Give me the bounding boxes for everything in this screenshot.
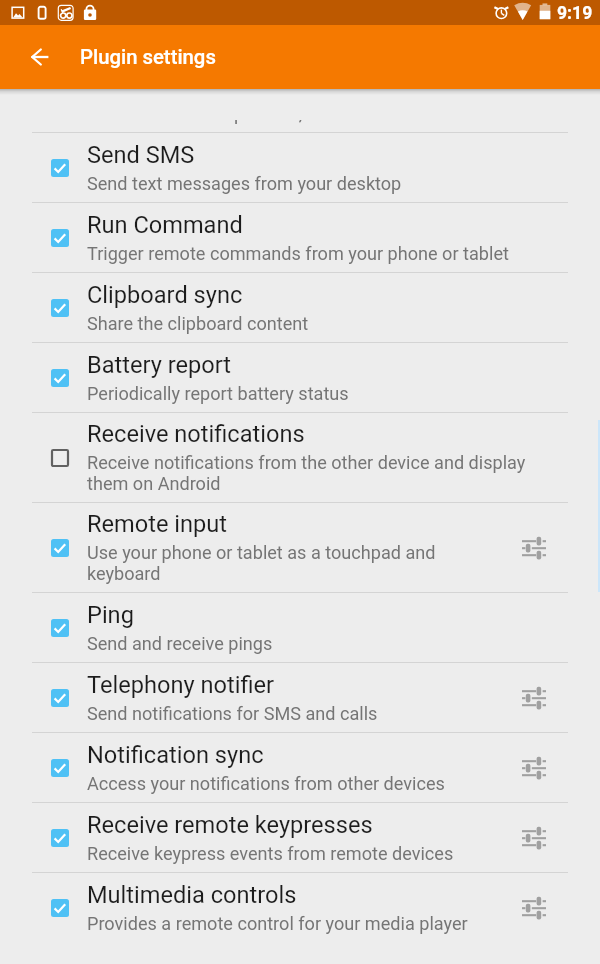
staticText: Remote input xyxy=(87,510,228,538)
staticText: Send and receive pings xyxy=(87,633,273,654)
button[interactable]: Send SMS xyxy=(0,133,600,202)
button[interactable]: Receive notifications xyxy=(0,413,600,502)
button[interactable]: Back xyxy=(8,25,72,89)
staticText: Battery report xyxy=(87,351,231,379)
button[interactable]: Plugin settings xyxy=(511,745,557,791)
button[interactable]: Ping xyxy=(0,593,600,662)
staticText: Share and receive pictures, videos or fi… xyxy=(87,103,419,124)
staticText: Send text messages from your desktop xyxy=(87,173,402,194)
staticText: Receive notifications xyxy=(87,420,305,448)
button[interactable]: Plugin settings xyxy=(511,525,557,571)
button[interactable]: Telephony notifier xyxy=(0,663,600,732)
button[interactable]: Share and receive xyxy=(0,63,600,132)
staticText: Clipboard sync xyxy=(87,281,243,309)
button[interactable]: Notification sync xyxy=(0,733,600,802)
staticText: Provides a remote control for your media… xyxy=(87,913,468,934)
staticText: Ping xyxy=(87,601,134,629)
button[interactable]: Clipboard sync xyxy=(0,273,600,342)
staticText: Telephony notifier xyxy=(87,671,274,699)
staticText: Receive keypress events from remote devi… xyxy=(87,843,454,864)
staticText: Share the clipboard content xyxy=(87,313,309,334)
staticText: Trigger remote commands from your phone … xyxy=(87,243,509,264)
staticText: Multimedia controls xyxy=(87,881,297,909)
staticText: Plugin settings xyxy=(80,45,216,69)
staticText: Use your phone or tablet as a touchpad a… xyxy=(87,542,487,585)
staticText: Send notifications for SMS and calls xyxy=(87,703,378,724)
button[interactable]: Plugin settings xyxy=(511,815,557,861)
button[interactable]: Multimedia controls xyxy=(0,873,600,942)
staticText: Access your notifications from other dev… xyxy=(87,773,445,794)
staticText: Notification sync xyxy=(87,741,264,769)
staticText: Share and receive xyxy=(87,71,273,99)
staticText: Receive remote keypresses xyxy=(87,811,373,839)
button[interactable]: Plugin settings xyxy=(511,885,557,931)
staticText: Run Command xyxy=(87,211,243,239)
button[interactable]: Battery report xyxy=(0,343,600,412)
button[interactable]: Plugin settings xyxy=(511,675,557,721)
button[interactable]: Receive remote keypresses xyxy=(0,803,600,872)
staticText: 9:19 xyxy=(557,3,593,24)
staticText: Periodically report battery status xyxy=(87,383,349,404)
staticText: Receive notifications from the other dev… xyxy=(87,452,535,495)
button[interactable]: Run Command xyxy=(0,203,600,272)
button[interactable]: Remote input xyxy=(0,503,600,592)
staticText: Send SMS xyxy=(87,141,195,169)
